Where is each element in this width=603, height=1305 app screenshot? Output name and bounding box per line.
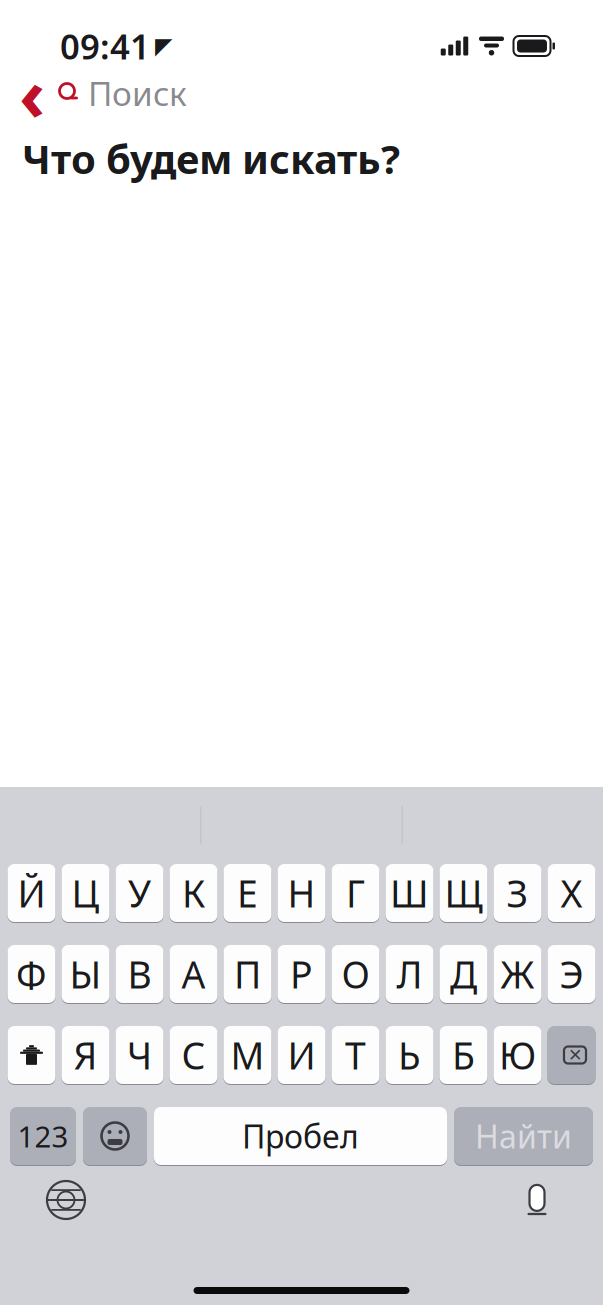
button[interactable]: Найти bbox=[454, 1106, 593, 1166]
staticText: Ы bbox=[69, 949, 101, 999]
button[interactable]: Сменить язык bbox=[38, 1172, 94, 1228]
button[interactable]: Т bbox=[331, 1025, 379, 1085]
staticText: Э bbox=[559, 949, 583, 999]
staticText: Ю bbox=[499, 1030, 536, 1080]
button[interactable]: Б bbox=[439, 1025, 487, 1085]
staticText: К bbox=[182, 868, 205, 918]
button[interactable]: В bbox=[115, 944, 163, 1004]
button[interactable]: Й bbox=[7, 863, 55, 923]
staticText: Ф bbox=[16, 949, 47, 999]
staticText: 09:41 bbox=[60, 23, 150, 69]
button[interactable]: М bbox=[223, 1025, 271, 1085]
staticText: В bbox=[127, 949, 151, 999]
button[interactable]: 123 bbox=[10, 1106, 76, 1166]
button[interactable]: Ж bbox=[493, 944, 541, 1004]
button[interactable]: Эмодзи bbox=[83, 1106, 147, 1166]
button[interactable]: З bbox=[493, 863, 541, 923]
button[interactable]: Щ bbox=[439, 863, 487, 923]
staticText: ‹ bbox=[19, 45, 45, 141]
staticText: С bbox=[181, 1030, 205, 1080]
staticText: З bbox=[506, 868, 528, 918]
button[interactable]: Г bbox=[331, 863, 379, 923]
staticText: Е bbox=[237, 868, 258, 918]
button[interactable]: Э bbox=[547, 944, 595, 1004]
staticText: ◤ bbox=[155, 33, 172, 59]
button[interactable]: Ю bbox=[493, 1025, 541, 1085]
staticText: П bbox=[234, 949, 261, 999]
staticText: ✕ bbox=[568, 1045, 583, 1065]
staticText: Н bbox=[287, 868, 315, 918]
button[interactable]: Р bbox=[277, 944, 325, 1004]
staticText: Т bbox=[345, 1030, 366, 1080]
staticText: А bbox=[181, 949, 205, 999]
staticText: Р bbox=[290, 949, 313, 999]
button[interactable]: Ш bbox=[385, 863, 433, 923]
button[interactable]: Ь bbox=[385, 1025, 433, 1085]
button[interactable]: Л bbox=[385, 944, 433, 1004]
button[interactable]: Н bbox=[277, 863, 325, 923]
staticText: Ш bbox=[390, 868, 429, 918]
staticText: Найти bbox=[475, 1115, 572, 1157]
staticText: Б bbox=[452, 1030, 475, 1080]
staticText: Х bbox=[560, 868, 582, 918]
staticText: Д bbox=[450, 949, 477, 999]
button[interactable]: И bbox=[277, 1025, 325, 1085]
button[interactable]: К bbox=[169, 863, 217, 923]
button[interactable]: О bbox=[331, 944, 379, 1004]
button[interactable]: Ы bbox=[61, 944, 109, 1004]
staticText: 123 bbox=[17, 1116, 68, 1155]
staticText: Я bbox=[73, 1030, 97, 1080]
staticText: Ц bbox=[71, 868, 99, 918]
button[interactable]: Поиск bbox=[58, 61, 330, 125]
staticText: Й bbox=[17, 868, 45, 918]
button[interactable]: Е bbox=[223, 863, 271, 923]
button[interactable]: Назад bbox=[6, 67, 58, 119]
staticText: Г bbox=[346, 868, 365, 918]
button[interactable]: У bbox=[115, 863, 163, 923]
button[interactable]: Ч bbox=[115, 1025, 163, 1085]
button[interactable]: Ф bbox=[7, 944, 55, 1004]
button[interactable]: Диктовка bbox=[509, 1172, 565, 1228]
staticText: М bbox=[230, 1030, 264, 1080]
staticText: Щ bbox=[444, 868, 482, 918]
button[interactable]: Я bbox=[61, 1025, 109, 1085]
staticText: О bbox=[341, 949, 369, 999]
button[interactable]: А bbox=[169, 944, 217, 1004]
button[interactable]: Х bbox=[547, 863, 595, 923]
staticText: Л bbox=[396, 949, 422, 999]
staticText: Поиск bbox=[88, 71, 187, 115]
button[interactable]: Ц bbox=[61, 863, 109, 923]
button[interactable]: Д bbox=[439, 944, 487, 1004]
button[interactable]: Пробел bbox=[154, 1106, 447, 1166]
button[interactable]: Удалить bbox=[547, 1025, 595, 1085]
button[interactable]: С bbox=[169, 1025, 217, 1085]
staticText: Ь bbox=[398, 1030, 421, 1080]
staticText: У bbox=[128, 868, 151, 918]
button[interactable]: П bbox=[223, 944, 271, 1004]
staticText: Ж bbox=[500, 949, 534, 999]
staticText: Пробел bbox=[242, 1115, 359, 1157]
staticText: Ч bbox=[127, 1030, 152, 1080]
staticText: И bbox=[287, 1030, 315, 1080]
button[interactable]: Shift bbox=[7, 1025, 55, 1085]
staticText: Что будем искать? bbox=[22, 132, 400, 185]
